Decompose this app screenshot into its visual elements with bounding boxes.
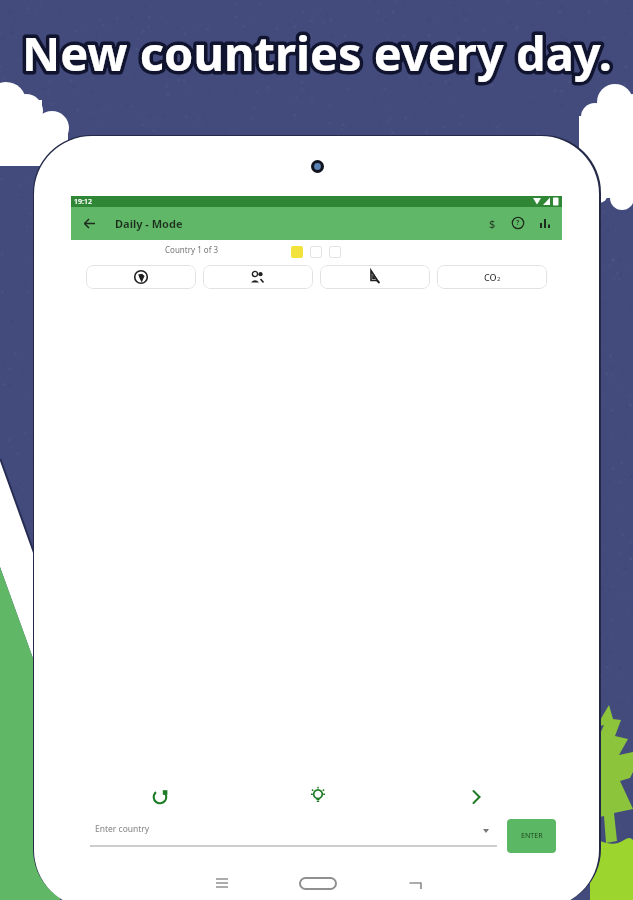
button[interactable]: ENTER (507, 819, 556, 853)
button[interactable] (409, 882, 422, 891)
button[interactable]: $ (489, 216, 496, 231)
button[interactable]: CO (437, 265, 547, 289)
button[interactable]: Enter country (95, 823, 150, 835)
button[interactable] (539, 217, 551, 229)
staticText: 2 (497, 275, 501, 283)
button[interactable] (152, 789, 168, 805)
button[interactable] (320, 265, 430, 289)
button[interactable] (203, 265, 313, 289)
button[interactable] (470, 790, 484, 804)
staticText: ENTER (521, 831, 543, 841)
staticText: New countries every day. (22, 21, 612, 85)
button[interactable] (299, 877, 337, 890)
staticText: CO (484, 271, 497, 283)
staticText: Country 1 of 3 (165, 244, 219, 255)
button[interactable] (216, 877, 228, 889)
staticText: ? (516, 218, 520, 228)
button[interactable]: ? (512, 217, 524, 229)
button[interactable] (84, 218, 96, 229)
staticText: Daily - Mode (115, 216, 183, 231)
button[interactable] (86, 265, 196, 289)
staticText: New countries every day. (22, 21, 612, 85)
button[interactable] (309, 786, 327, 804)
staticText: 19:12 (74, 197, 92, 207)
